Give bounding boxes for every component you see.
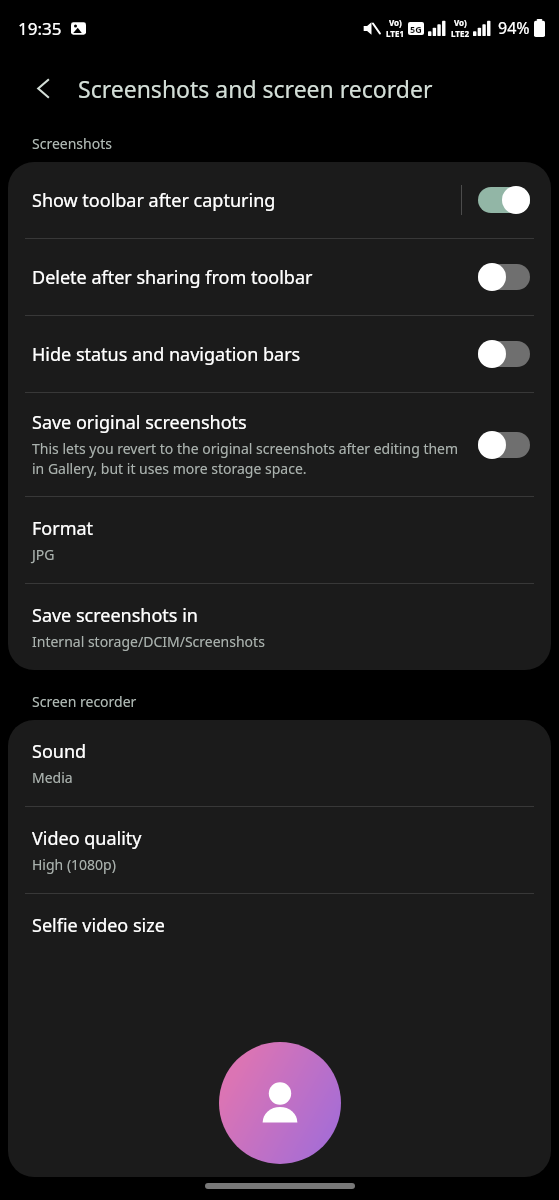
staticText: Vo) <box>389 17 402 28</box>
staticText: JPG <box>32 545 55 564</box>
button[interactable]: Off <box>478 262 530 292</box>
staticText: 5G <box>410 23 422 35</box>
staticText: Screenshots <box>32 134 112 153</box>
staticText: Vo) <box>454 17 467 28</box>
button[interactable]: Back <box>20 65 66 111</box>
staticText: Sound <box>32 739 87 764</box>
staticText: LTE2 <box>451 28 469 39</box>
button[interactable]: Format <box>8 497 551 583</box>
staticText: 19:35 <box>18 17 62 40</box>
button[interactable]: Selfie video size <box>8 894 551 957</box>
staticText: Internal storage/DCIM/Screenshots <box>32 632 265 651</box>
button[interactable]: Off <box>478 430 530 460</box>
button[interactable]: Sound <box>8 720 551 806</box>
staticText: LTE1 <box>386 28 404 39</box>
staticText: Media <box>32 768 73 787</box>
staticText: Delete after sharing from toolbar <box>32 265 478 290</box>
staticText: Save screenshots in <box>32 603 198 628</box>
staticText: Video quality <box>32 826 142 851</box>
staticText: Screenshots and screen recorder <box>78 73 433 104</box>
button[interactable]: Show toolbar after capturing <box>8 162 551 238</box>
button[interactable]: Off <box>478 339 530 369</box>
button[interactable]: Hide status and navigation bars <box>8 316 551 392</box>
staticText: 94% <box>498 17 530 39</box>
staticText: High (1080p) <box>32 855 116 874</box>
staticText: Save original screenshots <box>32 410 247 435</box>
staticText: Hide status and navigation bars <box>32 342 478 367</box>
staticText: Screen recorder <box>32 692 137 711</box>
staticText: Show toolbar after capturing <box>32 188 461 213</box>
staticText: Format <box>32 516 94 541</box>
button[interactable]: On <box>478 185 530 215</box>
staticText: Selfie video size <box>32 913 165 938</box>
button[interactable]: Video quality <box>8 807 551 893</box>
button[interactable]: Save screenshots in <box>8 584 551 670</box>
button[interactable]: Save original screenshots <box>8 393 551 496</box>
staticText: This lets you revert to the original scr… <box>32 439 462 479</box>
button[interactable]: Delete after sharing from toolbar <box>8 239 551 315</box>
button[interactable]: Profile <box>219 1042 341 1164</box>
